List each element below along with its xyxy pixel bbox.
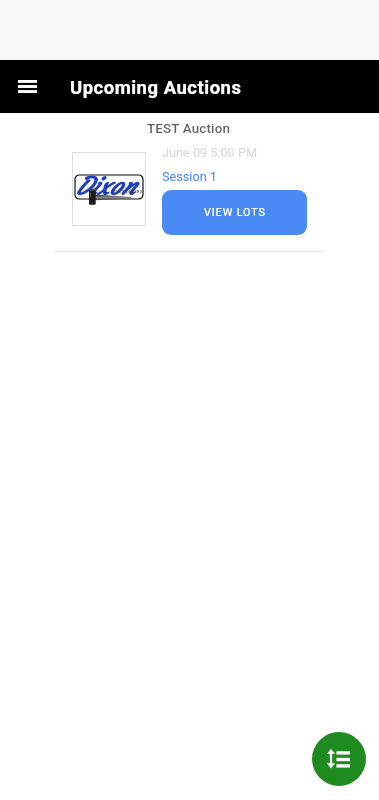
button[interactable]: Session 1	[162, 169, 217, 184]
staticText: June 09 5:00 PM	[162, 145, 257, 160]
button[interactable]: Sort auctions	[312, 732, 366, 786]
button[interactable]: Open navigation menu	[0, 60, 53, 113]
staticText: AUCTIONEERS	[113, 189, 143, 194]
staticText: TEST Auction	[0, 121, 378, 137]
staticText: VIEW LOTS	[204, 206, 266, 219]
button[interactable]: VIEW LOTS	[162, 190, 307, 235]
staticText: Upcoming Auctions	[70, 77, 242, 99]
staticText: Dixon	[75, 171, 135, 201]
button[interactable]: Auction logo	[72, 152, 146, 226]
